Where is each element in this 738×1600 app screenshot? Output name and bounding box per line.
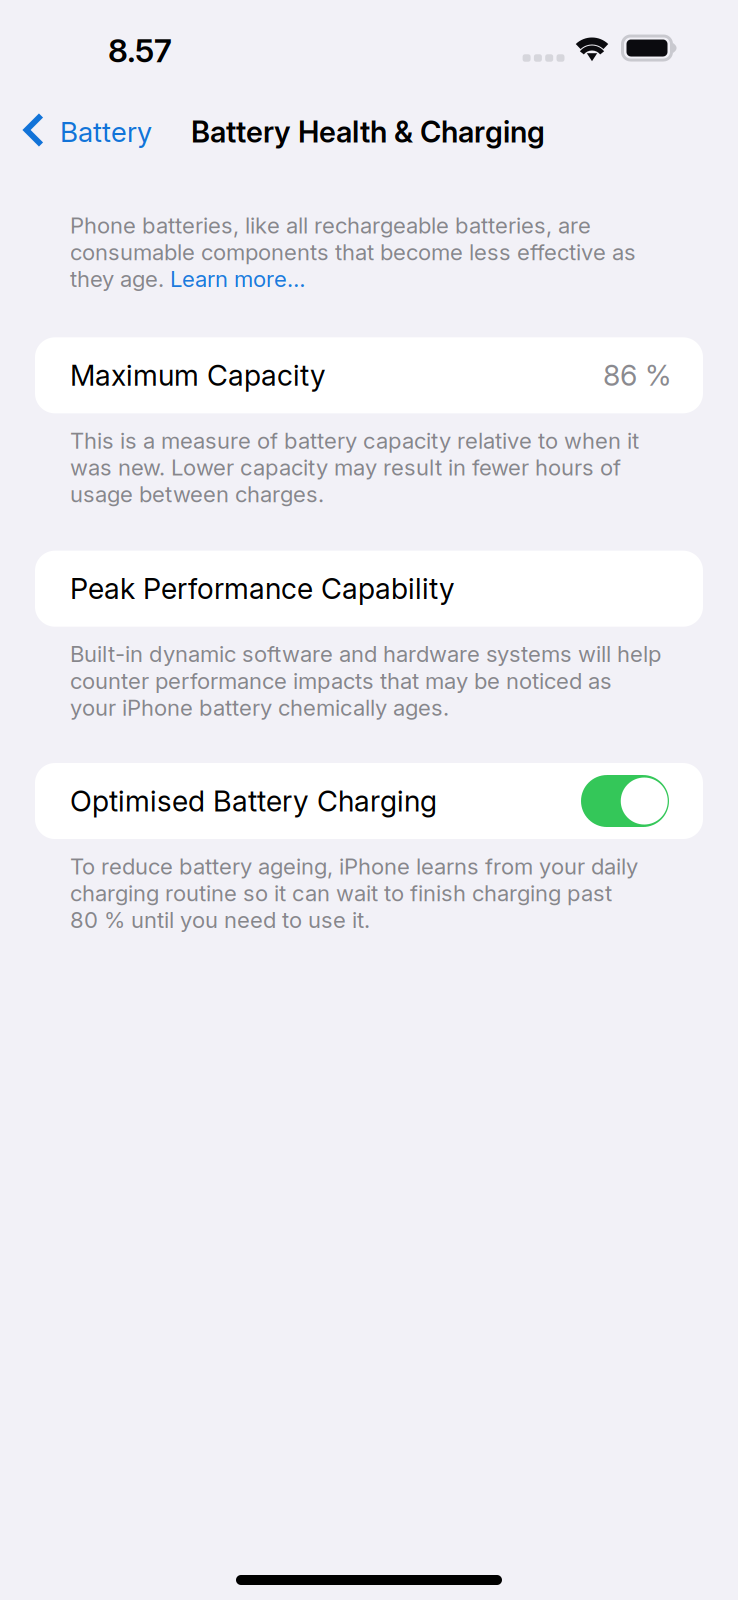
staticText: Battery	[60, 115, 152, 149]
button[interactable]: Peak Performance Capability	[35, 551, 703, 627]
staticText: This is a measure of battery capacity re…	[70, 427, 639, 508]
staticText: To reduce battery ageing, iPhone learns …	[70, 853, 638, 933]
button[interactable]: Optimised Battery Charging	[35, 763, 703, 839]
button[interactable]: Maximum Capacity	[35, 337, 703, 413]
button[interactable]: Learn more	[171, 264, 304, 290]
staticText: 8.57	[108, 31, 172, 70]
staticText: Battery Health & Charging	[191, 114, 545, 150]
staticText: Phone batteries, like all rechargeable b…	[70, 212, 636, 292]
staticText: 86 %	[603, 358, 671, 393]
staticText: Peak Performance Capability	[70, 571, 455, 606]
staticText: Built-in dynamic software and hardware s…	[70, 641, 661, 721]
staticText: Maximum Capacity	[70, 358, 326, 393]
button[interactable]: Battery	[0, 96, 168, 168]
button[interactable]: Optimised Battery Charging	[581, 775, 669, 827]
staticText: Optimised Battery Charging	[70, 784, 437, 818]
